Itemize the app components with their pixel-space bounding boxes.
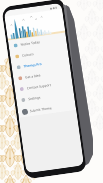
- staticText: ● ● ▮: [50, 5, 58, 9]
- button[interactable]: Notice Today: [8, 32, 67, 51]
- staticText: Contact Support: [26, 83, 52, 90]
- staticText: Notice Today: [20, 40, 41, 47]
- staticText: Get a Idea: [25, 73, 41, 79]
- button[interactable]: Get a Idea: [12, 65, 71, 84]
- button[interactable]: Contact Support: [14, 76, 73, 95]
- button[interactable]: Colours: [9, 43, 68, 62]
- button[interactable]: Themes Pro: [11, 54, 70, 73]
- staticText: Settings: [28, 95, 41, 101]
- staticText: Colours: [22, 52, 34, 58]
- button[interactable]: Submit Theme: [17, 99, 76, 118]
- staticText: Themes Pro: [23, 62, 43, 69]
- button[interactable]: Settings: [16, 87, 75, 106]
- staticText: Submit Theme: [30, 106, 52, 113]
